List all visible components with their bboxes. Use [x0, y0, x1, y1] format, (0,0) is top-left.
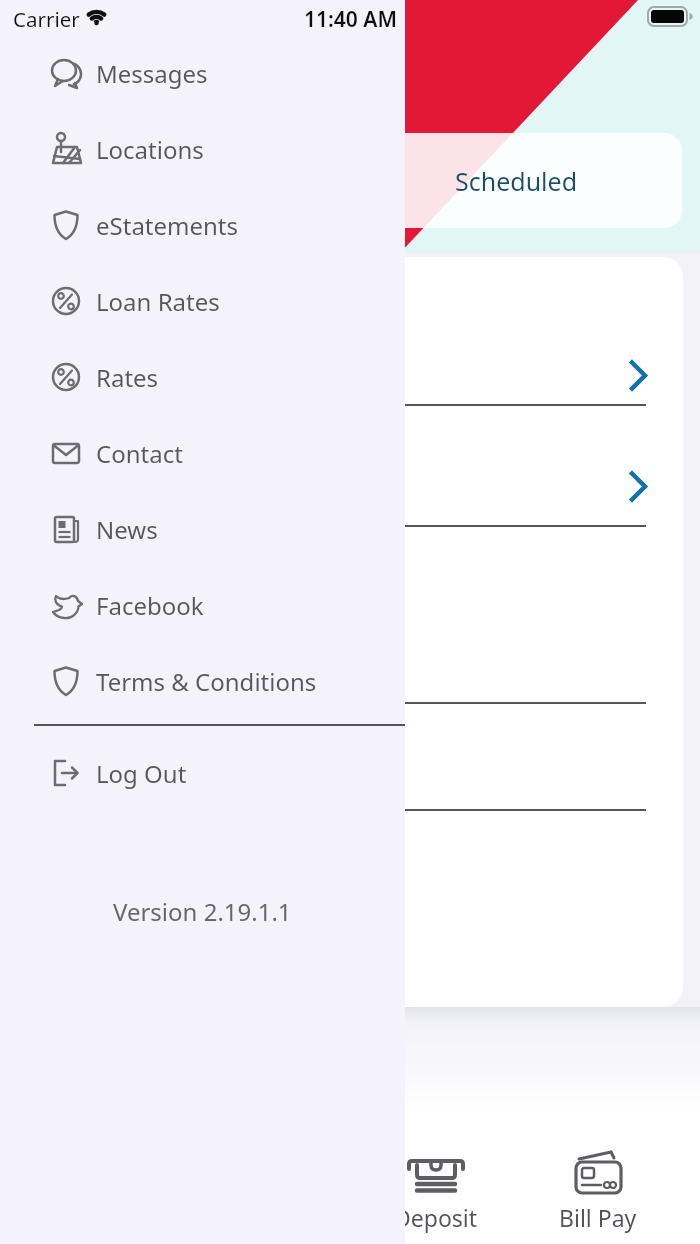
staticText: Rates: [96, 361, 159, 394]
button[interactable]: Scheduled: [350, 133, 682, 228]
button[interactable]: eStatements: [0, 187, 405, 263]
button[interactable]: Deposit: [374, 1140, 498, 1240]
button[interactable]: [20, 528, 683, 705]
button[interactable]: Messages: [0, 35, 405, 111]
staticText: Contact: [96, 437, 183, 470]
button[interactable]: Contact: [0, 415, 405, 491]
button[interactable]: Locations: [0, 111, 405, 187]
button[interactable]: Terms & Conditions: [0, 643, 405, 719]
button[interactable]: [18, 133, 350, 228]
button[interactable]: Loan Rates: [0, 263, 405, 339]
button[interactable]: Rates: [0, 339, 405, 415]
staticText: 11:40 AM: [304, 5, 397, 34]
staticText: eStatements: [96, 209, 239, 242]
button[interactable]: Log Out: [0, 735, 405, 811]
staticText: Terms & Conditions: [96, 665, 317, 698]
staticText: Bill Pay: [559, 1202, 637, 1233]
button[interactable]: [20, 705, 683, 812]
staticText: Loan Rates: [96, 285, 220, 318]
button[interactable]: Bill Pay: [536, 1140, 660, 1240]
staticText: Facebook: [96, 589, 204, 622]
staticText: News: [96, 513, 158, 546]
button[interactable]: News: [0, 491, 405, 567]
staticText: Deposit: [394, 1202, 478, 1233]
staticText: Locations: [96, 133, 204, 166]
staticText: Version 2.19.1.1: [113, 895, 292, 928]
button[interactable]: [20, 320, 683, 407]
button[interactable]: [20, 407, 683, 528]
staticText: Log Out: [96, 757, 187, 790]
staticText: Carrier: [13, 5, 80, 33]
staticText: Scheduled: [455, 164, 578, 198]
staticText: Messages: [96, 57, 208, 90]
button[interactable]: Facebook: [0, 567, 405, 643]
